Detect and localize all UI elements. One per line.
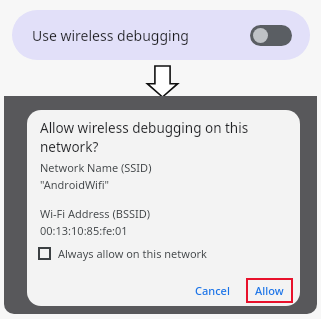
staticText: 00:13:10:85:fe:01	[40, 223, 128, 238]
staticText: network?	[40, 138, 99, 156]
button[interactable]: Allow	[246, 278, 293, 303]
staticText: Always allow on this network	[58, 246, 207, 261]
button[interactable]: Use wireless debugging	[12, 10, 310, 60]
staticText: Wi-Fi Address (BSSID)	[40, 206, 151, 221]
staticText: Allow wireless debugging on this	[40, 119, 249, 137]
button[interactable]: Always allow on this network	[38, 246, 207, 261]
button[interactable]: Use wireless debugging toggle	[250, 25, 292, 46]
staticText: Use wireless debugging	[32, 26, 189, 45]
staticText: Cancel	[195, 283, 230, 298]
staticText: Allow	[255, 283, 284, 298]
staticText: "AndroidWifi"	[40, 177, 110, 192]
button[interactable]: Cancel	[187, 278, 238, 303]
staticText: Network Name (SSID)	[40, 160, 152, 175]
